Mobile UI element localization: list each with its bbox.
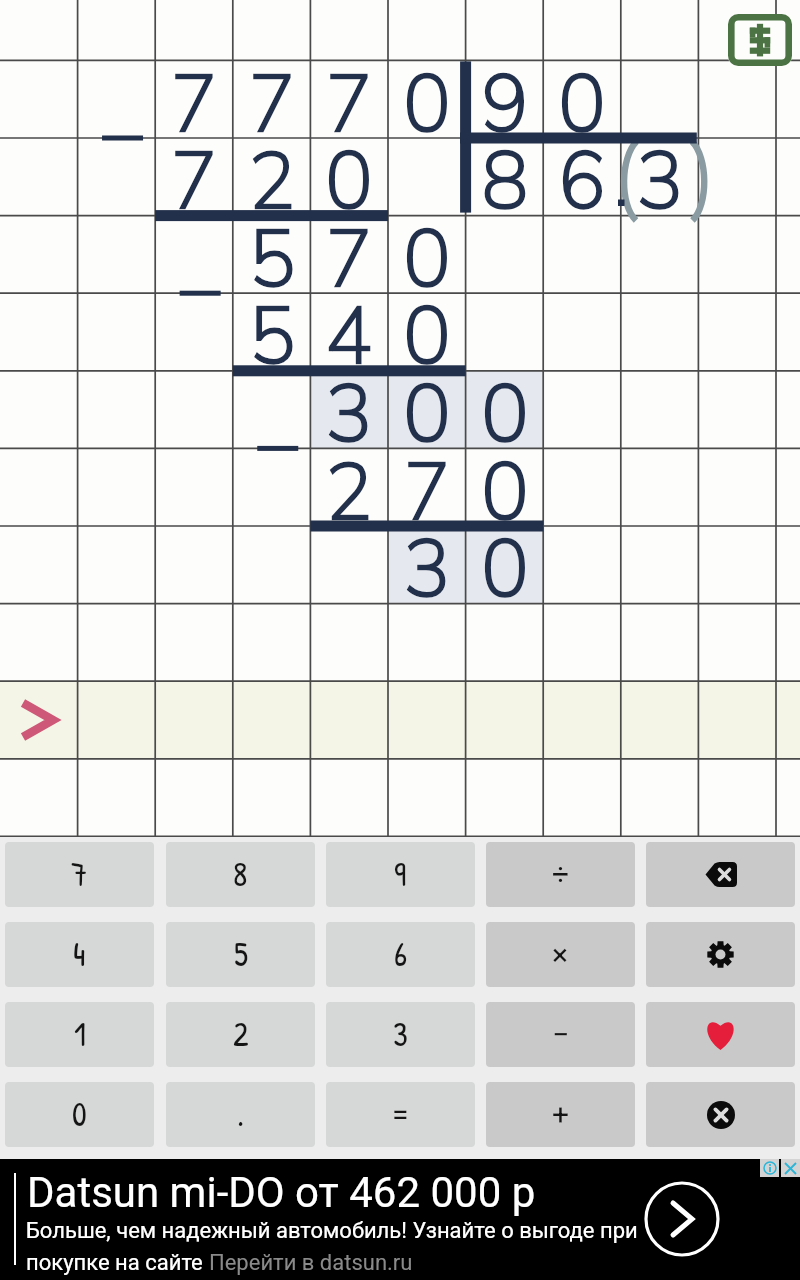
- staticText: 4: [325, 283, 373, 391]
- staticText: 0: [481, 516, 529, 624]
- button[interactable]: Backspace: [646, 842, 795, 907]
- button[interactable]: 9: [326, 842, 475, 907]
- staticText: 7: [170, 51, 218, 159]
- staticText: 3: [325, 361, 373, 469]
- staticText: 7: [248, 51, 296, 159]
- staticText: ÷: [552, 857, 570, 892]
- staticText: 0: [403, 51, 451, 159]
- staticText: 6: [558, 128, 606, 236]
- staticText: 3: [636, 128, 684, 236]
- staticText: Datsun mi-DO от 462 000 р: [27, 1168, 536, 1217]
- staticText: 2: [233, 1012, 249, 1057]
- button[interactable]: +: [486, 1082, 635, 1147]
- button[interactable]: Close advertisement: [781, 1159, 800, 1177]
- button[interactable]: Settings: [646, 922, 795, 987]
- staticText: 2: [325, 439, 373, 547]
- staticText: 7: [71, 852, 88, 897]
- button[interactable]: 7: [5, 842, 154, 907]
- button[interactable]: ×: [486, 922, 635, 987]
- staticText: 1: [74, 1012, 86, 1057]
- staticText: 0: [481, 361, 529, 469]
- button[interactable]: −: [486, 1002, 635, 1067]
- button[interactable]: 2: [166, 1002, 315, 1067]
- staticText: 8: [481, 128, 529, 236]
- button[interactable]: 1: [5, 1002, 154, 1067]
- staticText: 7: [325, 206, 373, 314]
- staticText: ×: [552, 937, 569, 972]
- staticText: 5: [248, 283, 296, 391]
- staticText: 6: [394, 932, 408, 977]
- button[interactable]: 6: [326, 922, 475, 987]
- button[interactable]: Favourite: [646, 1002, 795, 1067]
- staticText: 0: [403, 206, 451, 314]
- button[interactable]: Ad information: [760, 1159, 779, 1177]
- staticText: Больше, чем надежный автомобиль! Узнайте…: [26, 1218, 638, 1244]
- button[interactable]: 8: [166, 842, 315, 907]
- staticText: 2: [248, 128, 296, 236]
- staticText: =: [392, 1097, 409, 1132]
- staticText: 0: [72, 1092, 87, 1137]
- staticText: 3: [403, 516, 451, 624]
- button[interactable]: =: [326, 1082, 475, 1147]
- staticText: Перейти в datsun.ru: [209, 1250, 413, 1276]
- button[interactable]: Clear: [646, 1082, 795, 1147]
- staticText: 5: [248, 206, 296, 314]
- staticText: 0: [558, 51, 606, 159]
- staticText: 0: [481, 439, 529, 547]
- staticText: .: [237, 1092, 245, 1137]
- staticText: 9: [481, 51, 529, 159]
- button[interactable]: Open advertisement: [640, 1177, 724, 1261]
- staticText: 0: [403, 361, 451, 469]
- button[interactable]: ÷: [486, 842, 635, 907]
- button[interactable]: 4: [5, 922, 154, 987]
- button[interactable]: Remove ads: [728, 14, 792, 66]
- button[interactable]: .: [166, 1082, 315, 1147]
- staticText: покупке на сайте: [26, 1250, 209, 1276]
- button[interactable]: 0: [5, 1082, 154, 1147]
- staticText: +: [552, 1097, 570, 1132]
- button[interactable]: 5: [166, 922, 315, 987]
- staticText: 4: [73, 932, 86, 977]
- staticText: 8: [233, 852, 248, 897]
- staticText: 7: [325, 51, 373, 159]
- staticText: 3: [393, 1012, 408, 1057]
- staticText: 0: [403, 283, 451, 391]
- staticText: 7: [170, 128, 218, 236]
- button[interactable]: 3: [326, 1002, 475, 1067]
- staticText: 5: [234, 932, 248, 977]
- staticText: 7: [403, 439, 451, 547]
- staticText: −: [552, 1017, 570, 1052]
- staticText: 9: [394, 852, 407, 897]
- staticText: 0: [325, 128, 373, 236]
